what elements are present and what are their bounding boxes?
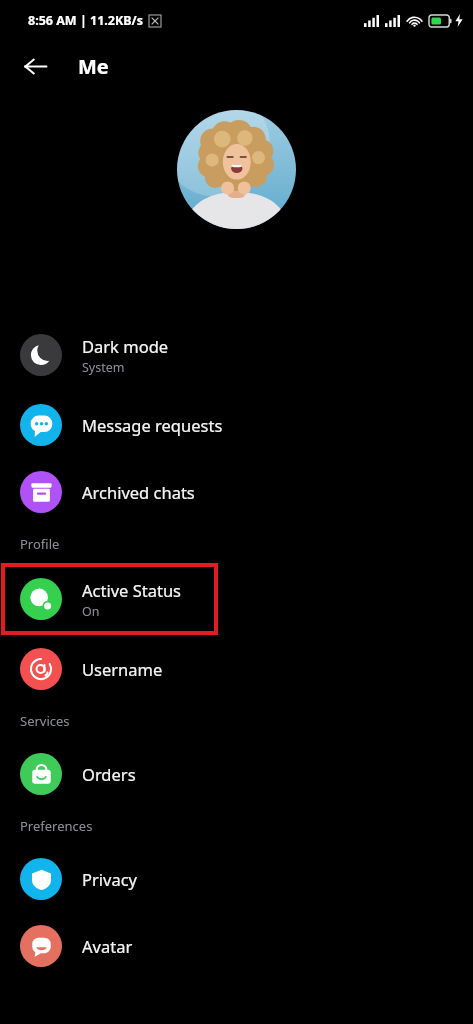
- staticText: On: [82, 603, 100, 620]
- staticText: Privacy: [82, 868, 138, 890]
- staticText: 8:56 AM | 11.2KB/s: [28, 12, 144, 29]
- staticText: Dark mode: [82, 335, 169, 357]
- staticText: Profile: [20, 535, 60, 553]
- button[interactable]: Archived chats: [0, 458, 473, 525]
- staticText: Archived chats: [82, 481, 195, 503]
- button[interactable]: Orders: [0, 740, 473, 807]
- staticText: Avatar: [82, 935, 133, 957]
- button[interactable]: Active Status: [0, 563, 473, 635]
- staticText: Me: [78, 53, 109, 80]
- button[interactable]: Avatar: [0, 912, 473, 979]
- staticText: Services: [20, 712, 70, 730]
- button[interactable]: Dark mode: [0, 319, 473, 391]
- staticText: Preferences: [20, 817, 93, 835]
- staticText: Username: [82, 658, 163, 680]
- button[interactable]: Message requests: [0, 391, 473, 458]
- button[interactable]: Profile photo: [177, 110, 296, 229]
- button[interactable]: Username: [0, 635, 473, 702]
- staticText: System: [82, 359, 125, 376]
- button[interactable]: Back: [13, 44, 57, 88]
- staticText: Orders: [82, 763, 136, 785]
- staticText: Active Status: [82, 579, 181, 601]
- staticText: Message requests: [82, 414, 223, 436]
- button[interactable]: Privacy: [0, 845, 473, 912]
